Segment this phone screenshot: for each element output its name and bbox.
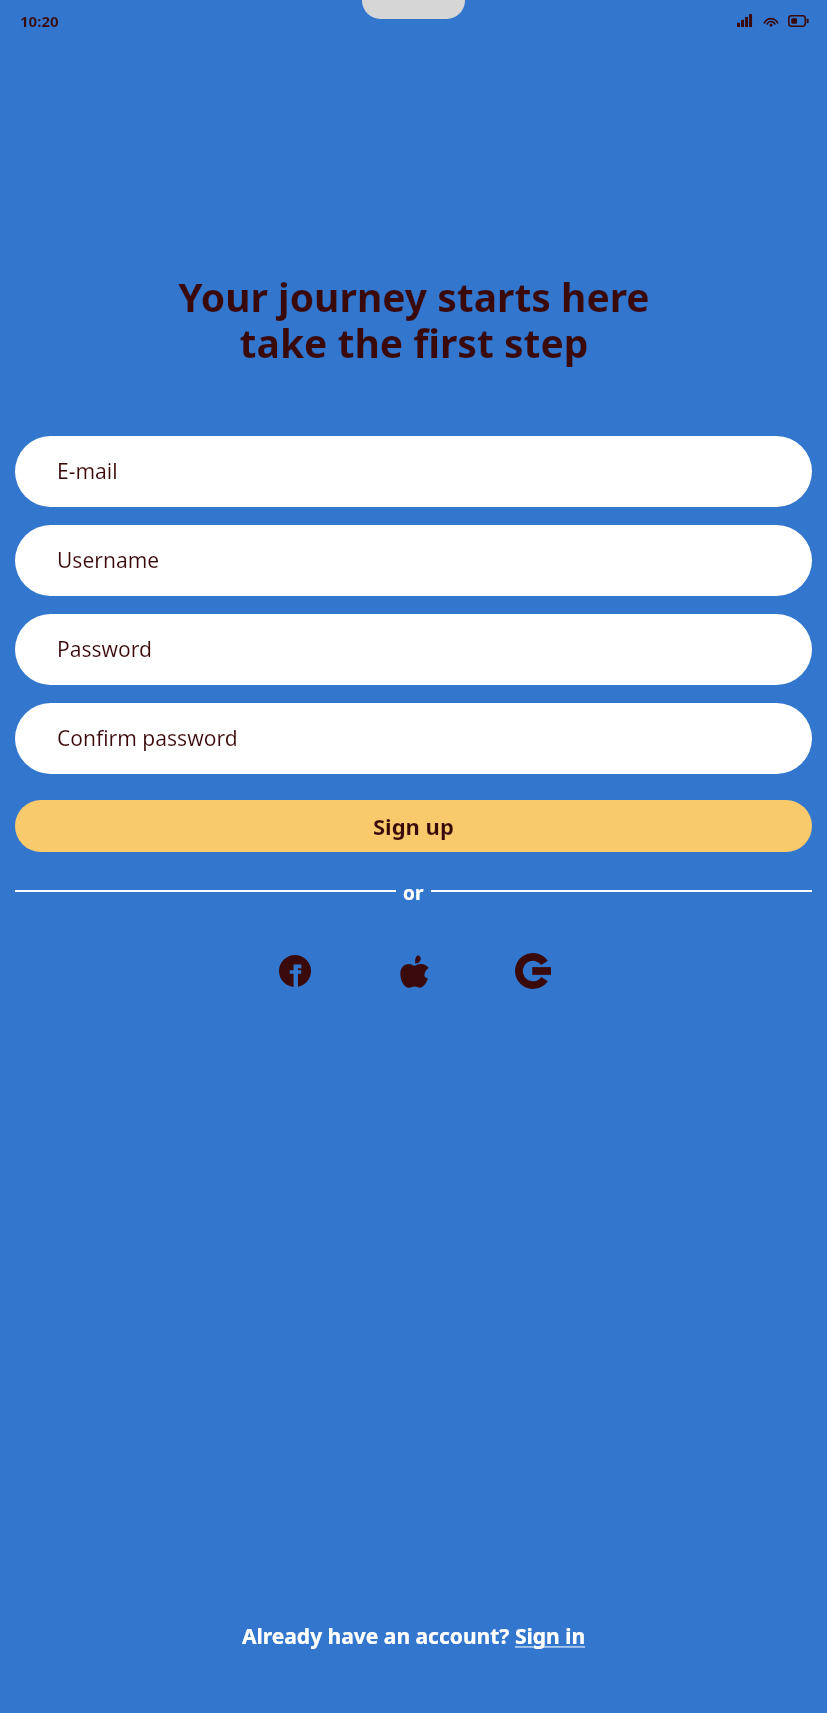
button[interactable]: Username (15, 525, 812, 596)
staticText: 10:20 (20, 11, 59, 31)
staticText: Sign in (515, 1622, 586, 1651)
button[interactable]: Sign up with Apple (382, 939, 446, 1003)
staticText: Confirm password (57, 724, 238, 753)
button[interactable]: Sign in (515, 1622, 586, 1651)
button[interactable]: E-mail (15, 436, 812, 507)
staticText: E-mail (57, 457, 118, 486)
button[interactable]: Sign up (15, 800, 812, 852)
staticText: Username (57, 546, 160, 575)
staticText: Your journey starts here take the first … (178, 270, 650, 370)
staticText: or (403, 880, 424, 902)
staticText: Password (57, 635, 152, 664)
staticText: Already have an account? (242, 1622, 515, 1651)
button[interactable]: Sign up with Google (501, 939, 565, 1003)
staticText: Sign up (373, 811, 454, 841)
button[interactable]: Confirm password (15, 703, 812, 774)
button[interactable]: Sign up with Facebook (263, 939, 327, 1003)
button[interactable]: Password (15, 614, 812, 685)
